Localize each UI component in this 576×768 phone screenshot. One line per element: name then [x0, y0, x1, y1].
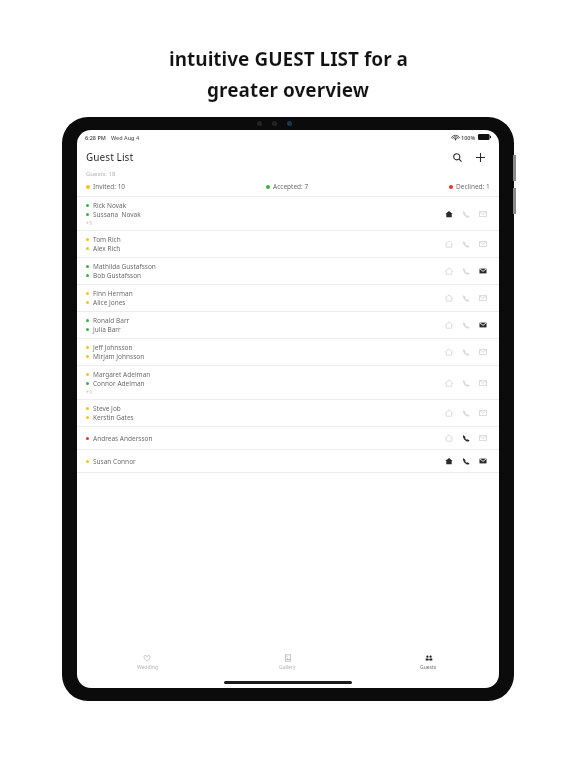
- button[interactable]: Call: [459, 454, 473, 468]
- staticText: Gallery: [279, 664, 296, 671]
- staticText: Alice Jones: [93, 298, 126, 307]
- button[interactable]: Rick Novak: [77, 197, 499, 230]
- button[interactable]: Call: [459, 237, 473, 251]
- button[interactable]: Email: [476, 431, 490, 445]
- button[interactable]: Call: [459, 406, 473, 420]
- button[interactable]: Call: [459, 376, 473, 390]
- staticText: 6:28 PM: [85, 134, 106, 141]
- button[interactable]: Search: [447, 147, 467, 167]
- button[interactable]: Declined: 1: [449, 182, 490, 191]
- button[interactable]: Address: [442, 345, 456, 359]
- button[interactable]: Email: [476, 318, 490, 332]
- button[interactable]: Address: [442, 318, 456, 332]
- staticText: Mirjam Johnsson: [93, 352, 145, 361]
- staticText: Kerstin Gates: [93, 413, 134, 422]
- staticText: Ronald Barr: [93, 316, 130, 325]
- button[interactable]: Email: [476, 264, 490, 278]
- button[interactable]: Address: [442, 291, 456, 305]
- button[interactable]: Call: [459, 431, 473, 445]
- staticText: Guest List: [86, 150, 134, 164]
- button[interactable]: Email: [476, 291, 490, 305]
- staticText: Wed Aug 4: [111, 134, 140, 141]
- staticText: Julia Barr: [93, 325, 121, 334]
- staticText: 100%: [461, 134, 476, 141]
- staticText: intuitive GUEST LIST for a: [169, 46, 408, 72]
- staticText: Alex Rich: [93, 244, 121, 253]
- button[interactable]: Email: [476, 237, 490, 251]
- button[interactable]: Andreas Andersson: [77, 427, 499, 449]
- button[interactable]: Steve Job: [77, 400, 499, 426]
- button[interactable]: Mathilda Gustafsson: [77, 258, 499, 284]
- button[interactable]: Address: [442, 431, 456, 445]
- button[interactable]: Invited: 10: [86, 182, 126, 191]
- staticText: Bob Gustafsson: [93, 271, 142, 280]
- staticText: Accepted: 7: [273, 182, 309, 191]
- staticText: Finn Herman: [93, 289, 133, 298]
- staticText: Guests: 18: [86, 170, 116, 178]
- button[interactable]: Email: [476, 376, 490, 390]
- staticText: greater overview: [207, 77, 369, 103]
- button[interactable]: Jeff Johnsson: [77, 339, 499, 365]
- button[interactable]: Call: [459, 291, 473, 305]
- staticText: Sussana Novak: [93, 210, 141, 219]
- button[interactable]: Address: [442, 237, 456, 251]
- staticText: Declined: 1: [456, 182, 490, 191]
- staticText: Mathilda Gustafsson: [93, 262, 156, 271]
- button[interactable]: Add guest: [470, 147, 490, 167]
- button[interactable]: Finn Herman: [77, 285, 499, 311]
- staticText: Margaret Adelman: [93, 370, 151, 379]
- staticText: Invited: 10: [93, 182, 126, 191]
- button[interactable]: Call: [459, 345, 473, 359]
- button[interactable]: Susan Connor: [77, 450, 499, 472]
- button[interactable]: Call: [459, 264, 473, 278]
- staticText: Wedding: [137, 664, 158, 671]
- button[interactable]: Tom Rich: [77, 231, 499, 257]
- button[interactable]: Address: [442, 454, 456, 468]
- button[interactable]: Email: [476, 207, 490, 221]
- button[interactable]: Call: [459, 318, 473, 332]
- button[interactable]: Call: [459, 207, 473, 221]
- staticText: Susan Connor: [93, 457, 136, 466]
- button[interactable]: Gallery: [217, 648, 358, 676]
- button[interactable]: Wedding: [77, 648, 217, 676]
- staticText: Rick Novak: [93, 201, 127, 210]
- button[interactable]: Address: [442, 264, 456, 278]
- button[interactable]: Address: [442, 207, 456, 221]
- button[interactable]: Email: [476, 406, 490, 420]
- staticText: Connor Adelman: [93, 379, 145, 388]
- button[interactable]: Address: [442, 406, 456, 420]
- staticText: Guests: [420, 664, 437, 671]
- staticText: Andreas Andersson: [93, 434, 153, 443]
- button[interactable]: Address: [442, 376, 456, 390]
- button[interactable]: Email: [476, 345, 490, 359]
- staticText: +1: [86, 388, 93, 395]
- staticText: +1: [86, 219, 93, 226]
- staticText: Jeff Johnsson: [93, 343, 133, 352]
- button[interactable]: Guests: [358, 648, 499, 676]
- button[interactable]: Email: [476, 454, 490, 468]
- staticText: Tom Rich: [93, 235, 121, 244]
- button[interactable]: Accepted: 7: [266, 182, 309, 191]
- staticText: Steve Job: [93, 404, 121, 413]
- button[interactable]: Margaret Adelman: [77, 366, 499, 399]
- button[interactable]: Ronald Barr: [77, 312, 499, 338]
